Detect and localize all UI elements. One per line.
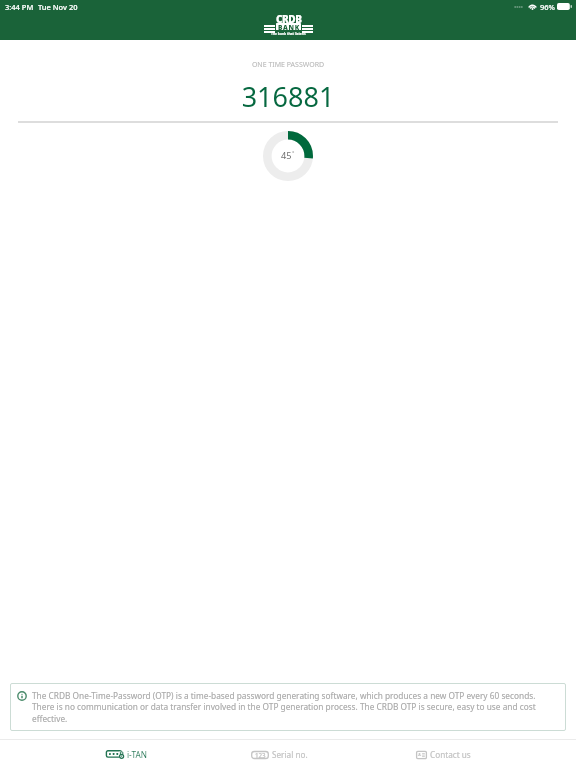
staticText: °	[292, 149, 295, 157]
staticText: Serial no.	[272, 749, 308, 760]
staticText: Contact us	[430, 749, 471, 760]
staticText: Tue Nov 20	[38, 2, 78, 12]
staticText: CRDB	[276, 12, 302, 26]
staticText: ONE TIME PASSWORD	[0, 60, 576, 70]
button[interactable]: Contact us	[384, 740, 576, 768]
staticText: The bank that listens	[271, 31, 306, 35]
staticText: 96%	[540, 2, 555, 12]
staticText: i-TAN	[127, 749, 147, 760]
staticText: BANK	[278, 23, 300, 30]
staticText: 123	[255, 751, 266, 759]
staticText: 45	[281, 149, 292, 162]
staticText: The CRDB One-Time-Password (OTP) is a ti…	[32, 690, 554, 724]
button[interactable]: i-TAN	[0, 740, 192, 768]
button[interactable]: Serial no.	[192, 740, 384, 768]
staticText: 316881	[0, 78, 576, 115]
staticText: 3:44 PM	[5, 2, 34, 12]
